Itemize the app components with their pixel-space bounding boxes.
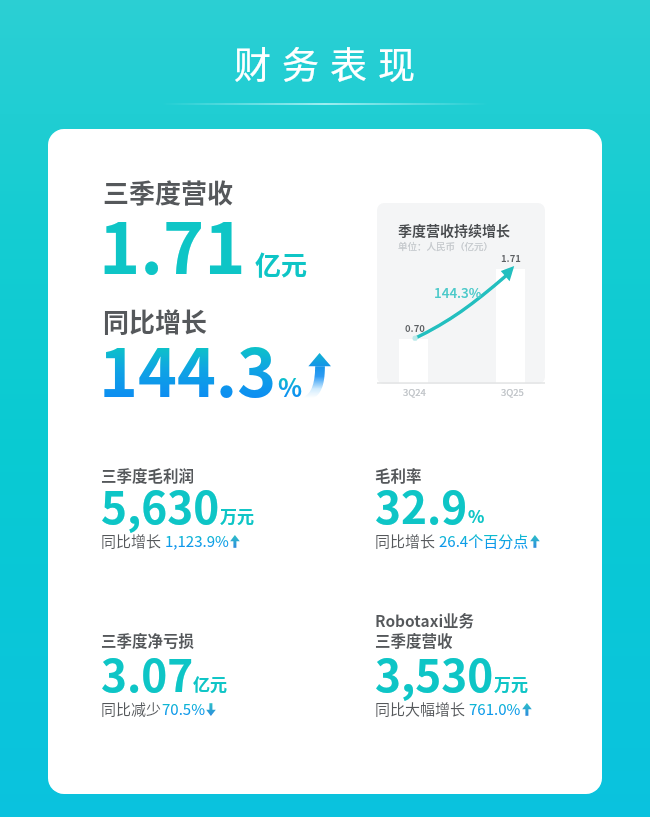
staticText: 毛利率 (375, 464, 422, 486)
staticText: 三季度净亏损 (101, 629, 195, 651)
staticText: 万元 (494, 671, 528, 696)
staticText: 70.5% (162, 698, 205, 720)
staticText: 财务表现 (234, 36, 426, 90)
staticText: 三季度营收 (103, 173, 234, 211)
staticText: 1,123.9% (165, 530, 229, 552)
staticText: 1.71 (99, 193, 246, 294)
staticText: 144.3% (434, 282, 482, 302)
staticText: 761.0% (469, 698, 521, 720)
staticText: Robotaxi业务 (375, 609, 475, 631)
staticText: 同比增长 (103, 302, 208, 340)
staticText: 26.4个百分点 (439, 530, 529, 552)
staticText: 亿元 (255, 245, 308, 283)
staticText: 同比增长 (375, 530, 439, 552)
staticText: 三季度毛利润 (101, 464, 195, 486)
staticText: % (278, 368, 303, 404)
staticText: 1.71 (501, 251, 521, 265)
staticText: 144.3 (99, 320, 277, 416)
staticText: 0.70 (405, 321, 425, 335)
staticText: 三季度营收 (375, 629, 453, 651)
staticText: % (468, 503, 485, 528)
staticText: 亿元 (193, 671, 227, 696)
staticText: 3Q24 (403, 385, 426, 399)
staticText: 同比减少 (101, 698, 162, 720)
staticText: 3.07 (101, 641, 194, 705)
staticText: 3,530 (375, 641, 494, 705)
staticText: 3Q25 (501, 385, 524, 399)
staticText: 季度营收持续增长 (398, 220, 510, 240)
staticText: 同比大幅增长 (375, 698, 469, 720)
staticText: 5,630 (101, 473, 220, 537)
staticText: 单位：人民币（亿元） (398, 239, 494, 253)
staticText: 万元 (220, 503, 254, 528)
staticText: 同比增长 (101, 530, 165, 552)
staticText: 32.9 (375, 473, 468, 537)
